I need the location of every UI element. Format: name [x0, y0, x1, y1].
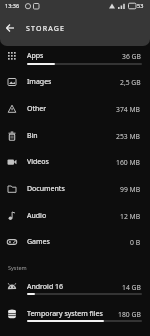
staticText: Videos [27, 157, 49, 167]
button[interactable]: Audio [0, 206, 150, 226]
staticText: 2,5 GB [120, 78, 141, 87]
staticText: 53 [137, 2, 144, 9]
staticText: 12 MB [120, 212, 141, 221]
button[interactable] [3, 21, 17, 35]
button[interactable]: Games [0, 232, 150, 252]
staticText: Temporary system files [27, 309, 103, 319]
button[interactable]: Documents [0, 179, 150, 199]
staticText: 36 GB [122, 52, 141, 61]
button[interactable]: Images [0, 72, 150, 92]
button[interactable]: Videos [0, 152, 150, 172]
button[interactable]: Bin [0, 126, 150, 146]
staticText: Apps [27, 51, 44, 61]
staticText: 374 MB [116, 105, 141, 114]
staticText: 0 B [130, 238, 141, 247]
staticText: 14 GB [122, 283, 141, 292]
staticText: 13:36 [5, 2, 20, 9]
staticText: 160 MB [116, 158, 141, 167]
staticText: STORAGE [26, 24, 66, 34]
button[interactable]: Temporary system files [0, 304, 150, 324]
staticText: Audio [27, 211, 47, 221]
button[interactable]: Android 16 [0, 277, 150, 297]
staticText: Other [27, 104, 47, 114]
staticText: 99 MB [120, 185, 141, 194]
staticText: Images [27, 77, 52, 87]
staticText: Bin [27, 131, 38, 141]
staticText: Android 16 [27, 282, 64, 292]
staticText: Games [27, 237, 50, 247]
staticText: 180 GB [118, 310, 141, 319]
staticText: System [8, 264, 27, 271]
staticText: 253 MB [116, 132, 141, 141]
button[interactable]: Apps [0, 46, 150, 66]
button[interactable]: Other [0, 99, 150, 119]
staticText: Documents [27, 184, 65, 194]
